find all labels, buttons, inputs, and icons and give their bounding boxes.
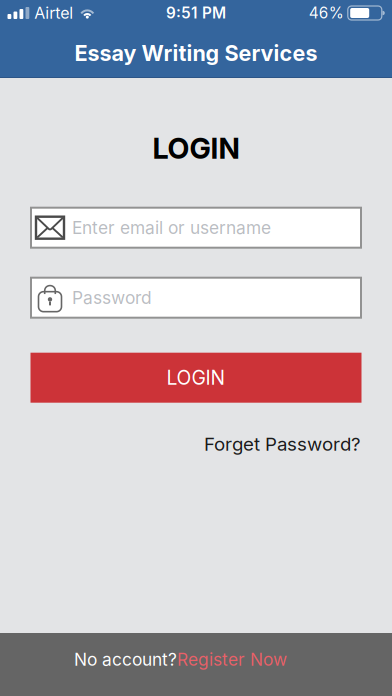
staticText: Airtel	[34, 3, 73, 23]
staticText: No account?	[74, 649, 177, 670]
staticText: Register Now	[177, 649, 287, 670]
staticText: 46%	[309, 4, 344, 22]
staticText: Essay Writing Services	[74, 40, 317, 66]
staticText: LOGIN	[152, 131, 239, 166]
button[interactable]: Register Now	[177, 649, 287, 670]
staticText: Password	[72, 287, 152, 308]
staticText: LOGIN	[166, 366, 225, 389]
staticText: Enter email or username	[72, 217, 271, 238]
staticText: Forget Password?	[204, 433, 361, 455]
staticText: 9:51 PM	[166, 4, 226, 22]
button[interactable]: Forget Password?	[204, 433, 361, 455]
button[interactable]: LOGIN	[30, 353, 361, 403]
